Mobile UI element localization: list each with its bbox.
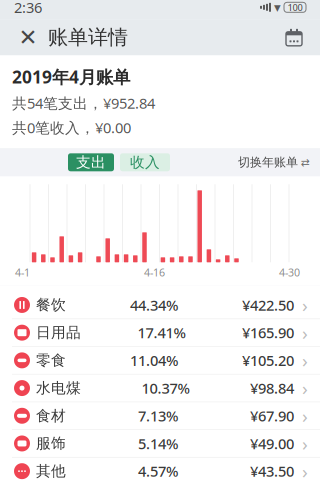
staticText: › bbox=[302, 459, 308, 480]
staticText: 其他 bbox=[36, 462, 66, 480]
staticText: 5.14% bbox=[138, 434, 178, 453]
staticText: ⇄ bbox=[301, 156, 310, 168]
staticText: 11.04% bbox=[130, 351, 178, 370]
staticText: 餐饮 bbox=[36, 296, 66, 314]
staticText: 7.13% bbox=[138, 406, 178, 425]
button[interactable]: 切换年账单 bbox=[238, 155, 310, 170]
staticText: 4-16 bbox=[144, 265, 165, 279]
staticText: ▾ bbox=[274, 0, 281, 15]
staticText: › bbox=[302, 376, 308, 400]
staticText: 日用品 bbox=[36, 324, 81, 342]
staticText: 100 bbox=[287, 1, 302, 13]
staticText: 17.41% bbox=[137, 323, 185, 342]
staticText: 4-30 bbox=[279, 265, 300, 279]
staticText: 水电煤 bbox=[36, 379, 81, 397]
button[interactable]: Select date bbox=[274, 19, 314, 55]
staticText: ¥105.20 bbox=[242, 351, 294, 370]
staticText: 共54笔支出，¥952.84 bbox=[12, 93, 155, 113]
staticText: 共0笔收入，¥0.00 bbox=[12, 118, 131, 137]
button[interactable]: 水电煤 bbox=[0, 374, 320, 402]
button[interactable]: 食材 bbox=[0, 402, 320, 429]
staticText: › bbox=[302, 348, 308, 373]
staticText: › bbox=[302, 403, 308, 428]
staticText: 零食 bbox=[36, 351, 66, 369]
staticText: 2:36 bbox=[14, 0, 42, 17]
staticText: 收入 bbox=[130, 153, 160, 171]
staticText: 4-1 bbox=[15, 265, 30, 279]
staticText: 支出 bbox=[76, 153, 106, 171]
staticText: 44.34% bbox=[130, 295, 178, 315]
staticText: ¥98.84 bbox=[250, 378, 294, 398]
staticText: › bbox=[302, 293, 308, 317]
staticText: 切换年账单 bbox=[238, 155, 298, 170]
staticText: ¥49.00 bbox=[250, 434, 294, 453]
staticText: 4.57% bbox=[138, 461, 178, 480]
button[interactable]: 餐饮 bbox=[0, 291, 320, 318]
staticText: 食材 bbox=[36, 407, 66, 425]
button[interactable]: 日用品 bbox=[0, 318, 320, 346]
staticText: 账单详情 bbox=[48, 25, 128, 50]
staticText: ✕ bbox=[18, 24, 37, 50]
staticText: 服饰 bbox=[36, 434, 66, 452]
button[interactable]: 其他 bbox=[0, 457, 320, 480]
staticText: ¥43.50 bbox=[250, 461, 294, 480]
staticText: › bbox=[302, 320, 308, 345]
button[interactable]: 支出 bbox=[68, 153, 114, 171]
staticText: 2019年4月账单 bbox=[12, 65, 130, 88]
button[interactable]: 收入 bbox=[120, 153, 170, 171]
button[interactable]: Close bbox=[8, 19, 48, 55]
button[interactable]: 零食 bbox=[0, 346, 320, 374]
staticText: ¥67.90 bbox=[250, 406, 294, 425]
staticText: ¥422.50 bbox=[242, 295, 294, 315]
staticText: › bbox=[302, 431, 308, 456]
button[interactable]: 服饰 bbox=[0, 429, 320, 457]
staticText: ¥165.90 bbox=[242, 323, 294, 342]
staticText: 10.37% bbox=[141, 378, 189, 398]
